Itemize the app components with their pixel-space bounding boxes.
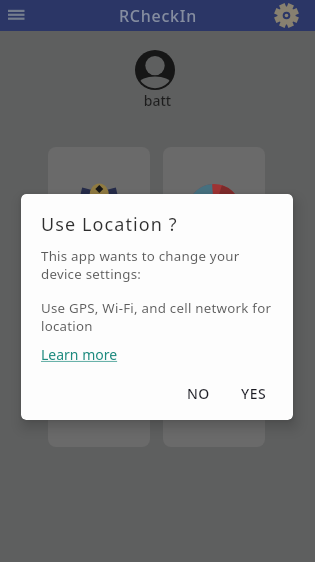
button[interactable] [273, 1, 303, 30]
staticText: RCheckIn [119, 5, 197, 27]
button[interactable]: Learn more [41, 345, 118, 364]
button[interactable]: NO [174, 377, 222, 409]
button[interactable] [3, 3, 31, 29]
button[interactable] [163, 304, 265, 447]
staticText: NO [187, 384, 210, 403]
staticText: Use Location ? [41, 212, 178, 237]
staticText: This app wants to change your device set… [41, 247, 240, 283]
staticText: Learn more [41, 345, 118, 364]
button[interactable] [48, 147, 150, 290]
button[interactable] [48, 304, 150, 447]
button[interactable] [163, 147, 265, 290]
staticText: YES [241, 384, 267, 403]
button[interactable] [135, 50, 175, 90]
button[interactable]: YES [230, 377, 278, 409]
staticText: Use GPS, Wi-Fi, and cell network for loc… [41, 299, 272, 335]
staticText: batt [0, 91, 315, 110]
